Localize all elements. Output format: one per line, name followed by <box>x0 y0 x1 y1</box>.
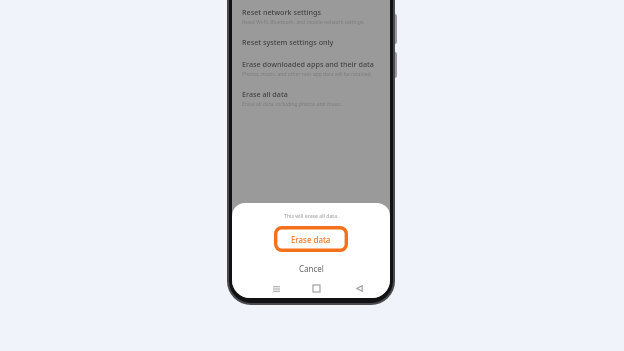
button[interactable]: Erase data <box>274 226 348 252</box>
staticText: Erase downloaded apps and their data <box>242 59 374 69</box>
button[interactable]: Recents <box>269 281 283 295</box>
staticText: This will erase all data. <box>284 212 339 219</box>
staticText: Reset system settings only <box>242 37 334 47</box>
staticText: Reset network settings <box>242 7 321 17</box>
staticText: Erase all data, including photos and mus… <box>242 101 343 108</box>
staticText: Reset Wi-Fi, Bluetooth, and mobile netwo… <box>242 19 365 26</box>
button[interactable]: Back <box>352 281 366 295</box>
button[interactable]: Home <box>309 281 323 295</box>
staticText: Erase data <box>291 234 331 245</box>
button[interactable]: Cancel <box>232 260 390 276</box>
staticText: Cancel <box>299 263 324 274</box>
staticText: Erase all data <box>242 89 288 99</box>
staticText: Photos, music, and other non-app data wi… <box>242 71 373 78</box>
